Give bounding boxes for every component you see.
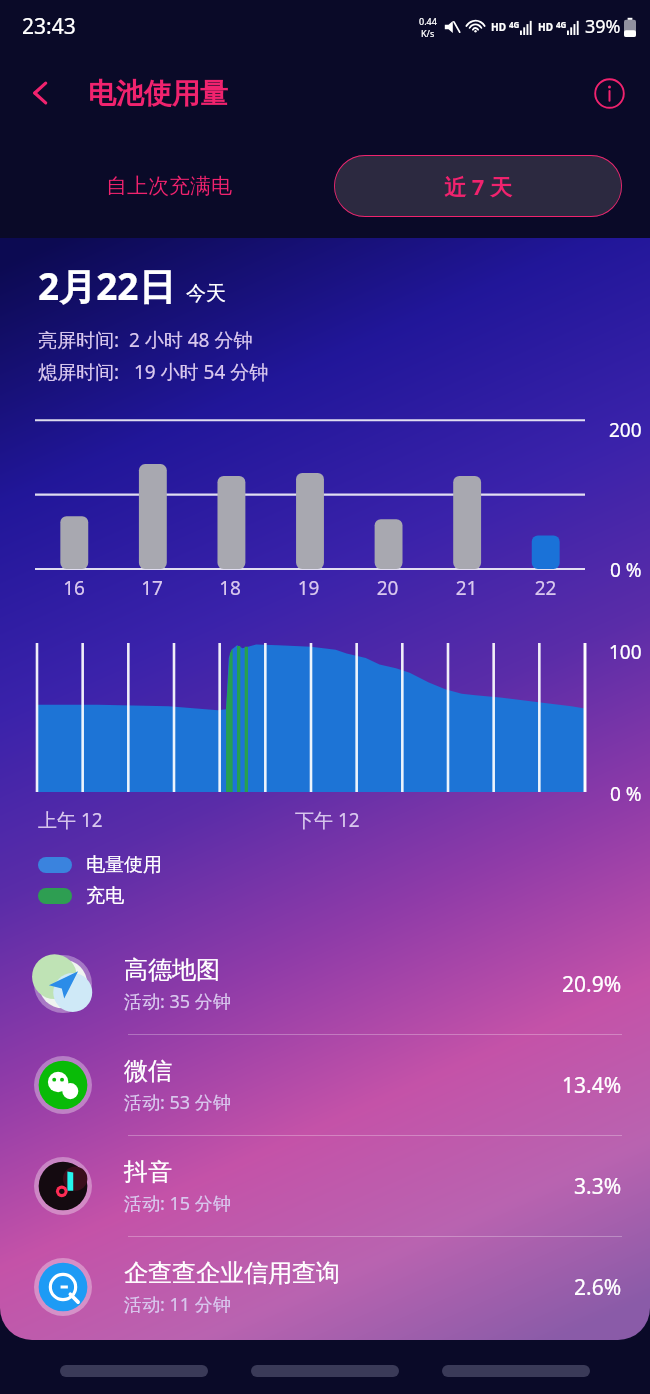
staticText: 17 <box>113 575 191 601</box>
staticText: 200 <box>609 417 642 443</box>
staticText: 20.9% <box>562 970 622 999</box>
button[interactable]: 企查查企业信用查询 <box>0 1237 650 1337</box>
staticText: 近 7 天 <box>444 171 513 201</box>
staticText: 21 <box>427 575 506 601</box>
staticText: 今天 <box>186 281 226 306</box>
staticText: 20 <box>348 575 427 601</box>
staticText: 活动: 35 分钟 <box>124 989 231 1014</box>
button[interactable]: Navigation <box>60 1365 208 1377</box>
staticText: 自上次充满电 <box>106 173 232 199</box>
staticText: 3.3% <box>574 1172 622 1201</box>
staticText: 0 % <box>610 557 642 583</box>
staticText: 19 <box>269 575 348 601</box>
staticText: HD <box>538 20 553 34</box>
staticText: 18 <box>191 575 269 601</box>
staticText: 企查查企业信用查询 <box>124 1258 340 1288</box>
staticText: 上午 12 <box>38 807 103 833</box>
button[interactable]: 高德地图 <box>0 934 650 1034</box>
staticText: 22 <box>506 575 585 601</box>
button[interactable]: 近 7 天 <box>334 155 622 217</box>
staticText: 活动: 11 分钟 <box>124 1292 231 1317</box>
staticText: 2.6% <box>574 1273 622 1302</box>
staticText: 电池使用量 <box>88 76 228 111</box>
staticText: 电量使用 <box>86 853 162 877</box>
staticText: 抖音 <box>124 1157 172 1187</box>
staticText: 4G <box>509 19 520 30</box>
staticText: 13.4% <box>562 1071 622 1100</box>
staticText: 微信 <box>124 1056 172 1086</box>
staticText: 100 <box>609 639 642 665</box>
button[interactable]: Back <box>14 66 68 120</box>
button[interactable]: Navigation <box>442 1365 590 1377</box>
staticText: 2月22日 <box>38 260 176 311</box>
staticText: 活动: 53 分钟 <box>124 1090 231 1115</box>
button[interactable]: 微信 <box>0 1035 650 1135</box>
staticText: 充电 <box>86 884 124 908</box>
staticText: 4G <box>556 19 567 30</box>
staticText: 39% <box>585 14 621 39</box>
staticText: 下午 12 <box>295 807 360 833</box>
button[interactable]: Navigation <box>251 1365 399 1377</box>
staticText: 23:43 <box>22 12 76 41</box>
staticText: 活动: 15 分钟 <box>124 1191 231 1216</box>
staticText: 0 % <box>610 781 642 807</box>
button[interactable]: Information <box>582 66 636 120</box>
button[interactable]: 抖音 <box>0 1136 650 1236</box>
staticText: 16 <box>35 575 113 601</box>
staticText: 熄屏时间: 19 小时 54 分钟 <box>38 359 269 385</box>
staticText: 高德地图 <box>124 955 220 985</box>
staticText: K/s <box>421 27 435 39</box>
staticText: 0.44 <box>419 15 437 27</box>
button[interactable]: 自上次充满电 <box>92 161 246 211</box>
staticText: 亮屏时间: 2 小时 48 分钟 <box>38 327 253 353</box>
staticText: HD <box>491 20 506 34</box>
